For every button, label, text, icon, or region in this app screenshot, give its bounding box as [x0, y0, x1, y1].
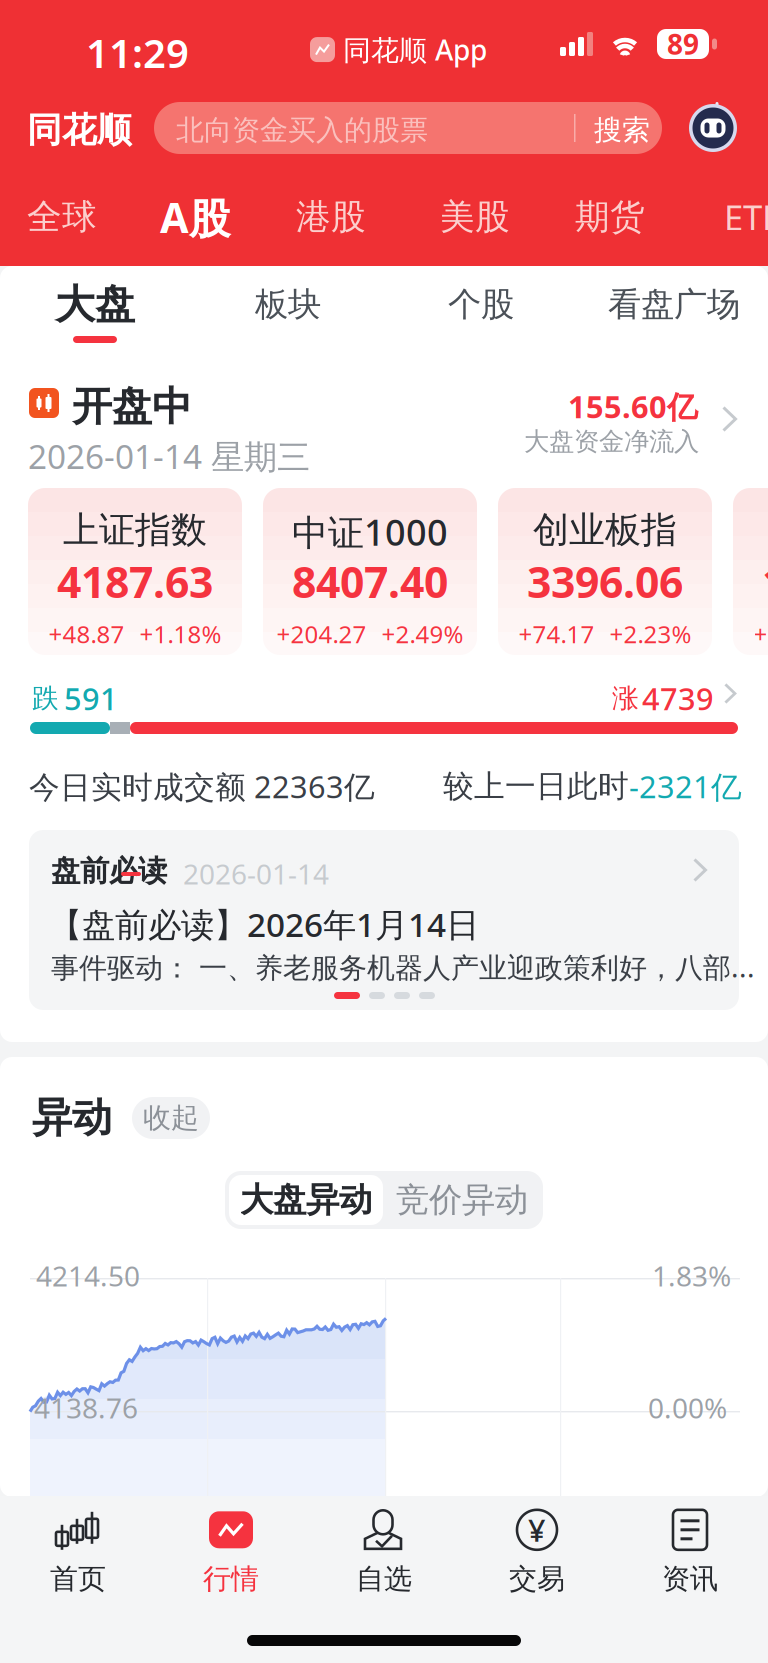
staticText: 大盘	[55, 280, 135, 329]
button[interactable]: 中证1000	[263, 488, 477, 655]
button[interactable]: AI 助手	[688, 103, 738, 153]
staticText: 4739	[642, 678, 714, 719]
button[interactable]: 大盘	[2, 280, 188, 352]
staticText: 同花顺 App	[343, 31, 487, 68]
staticText: +204.27	[276, 618, 366, 650]
staticText: 港股	[296, 196, 366, 238]
button[interactable]: 收起	[132, 1097, 210, 1139]
staticText: 期货	[575, 196, 645, 238]
staticText: 2026-01-14 星期三	[28, 434, 310, 478]
button[interactable]: 大盘异动	[229, 1175, 383, 1225]
button[interactable]: 港股	[263, 186, 399, 248]
button[interactable]: ETF	[684, 186, 768, 248]
staticText: +1.18%	[139, 618, 221, 650]
staticText: 【盘前必读】2026年1月14日	[49, 902, 479, 946]
staticText: +301.2	[753, 618, 768, 650]
staticText: 13952.1	[762, 553, 768, 610]
button[interactable]: ¥	[460, 1507, 613, 1597]
staticText: 0.00%	[648, 1389, 727, 1426]
staticText: 2026-01-14	[183, 855, 329, 892]
staticText: 4214.50	[36, 1257, 140, 1294]
staticText: 大盘资金净流入	[524, 426, 699, 457]
staticText: 中证1000	[292, 508, 448, 556]
staticText: 4138.76	[34, 1389, 138, 1426]
button[interactable]: 竞价异动	[385, 1175, 539, 1225]
staticText: 8407.40	[292, 553, 448, 610]
button[interactable]: 首页	[1, 1507, 154, 1597]
button[interactable]: 板块	[195, 280, 381, 352]
staticText: ¥	[528, 1509, 546, 1550]
staticText: 4187.63	[57, 553, 213, 610]
staticText: 全球	[27, 196, 97, 238]
staticText: 事件驱动： 一、养老服务机器人产业迎政策利好，八部门发文…	[51, 948, 761, 985]
staticText: 竞价异动	[396, 1179, 528, 1220]
button[interactable]: 个股	[388, 280, 574, 352]
staticText: +2.49%	[381, 618, 463, 650]
staticText: 155.60亿	[568, 386, 698, 427]
staticText: ETF	[724, 194, 768, 240]
staticText: 盘前必读	[51, 853, 167, 889]
staticText: 北向资金买入的股票	[176, 113, 428, 147]
staticText: 收起	[143, 1101, 199, 1135]
staticText: 1.83%	[652, 1257, 731, 1294]
staticText: 个股	[448, 284, 514, 325]
staticText: 创业板指	[533, 508, 677, 552]
staticText: +74.17	[518, 618, 594, 650]
button[interactable]: 深证成指	[733, 488, 768, 655]
staticText: 交易	[509, 1562, 565, 1596]
staticText: 板块	[255, 284, 321, 325]
staticText: 大盘异动	[240, 1179, 372, 1220]
staticText: -2321亿	[629, 766, 742, 807]
button[interactable]: 自选	[307, 1507, 460, 1597]
staticText: 今日实时成交额 22363亿	[29, 766, 375, 807]
button[interactable]: 美股	[407, 186, 543, 248]
button[interactable]: 看盘广场	[581, 280, 767, 352]
staticText: 开盘中	[72, 382, 192, 431]
staticText: 资讯	[662, 1562, 718, 1596]
staticText: 涨	[612, 682, 639, 715]
button[interactable]: 北向资金买入的股票	[154, 102, 662, 154]
staticText: 自选	[356, 1562, 412, 1596]
button[interactable]: 全球	[0, 186, 130, 248]
staticText: A股	[160, 189, 230, 244]
staticText: 跌	[32, 682, 59, 715]
staticText: 较上一日此时	[443, 767, 629, 805]
staticText: 行情	[203, 1562, 259, 1596]
staticText: 3396.06	[527, 553, 683, 610]
staticText: 11:29	[86, 26, 189, 79]
button[interactable]: 创业板指	[498, 488, 712, 655]
button[interactable]: 资讯	[613, 1507, 766, 1597]
staticText: 美股	[440, 196, 510, 238]
button[interactable]: A股	[127, 186, 263, 248]
button[interactable]: 上证指数	[28, 488, 242, 655]
staticText: 89	[667, 25, 699, 63]
staticText: +48.87	[48, 618, 124, 650]
staticText: 异动	[32, 1093, 112, 1142]
button[interactable]: 盘前必读	[29, 830, 739, 1010]
staticText: 看盘广场	[608, 284, 740, 325]
button[interactable]: 期货	[542, 186, 678, 248]
button[interactable]: 155.60亿	[469, 390, 699, 458]
staticText: 同花顺	[27, 109, 132, 152]
staticText: +2.23%	[609, 618, 691, 650]
staticText: 搜索	[594, 113, 650, 147]
staticText: 591	[64, 678, 118, 719]
staticText: 首页	[50, 1562, 106, 1596]
staticText: 上证指数	[63, 508, 207, 552]
button[interactable]: 行情	[154, 1507, 307, 1597]
